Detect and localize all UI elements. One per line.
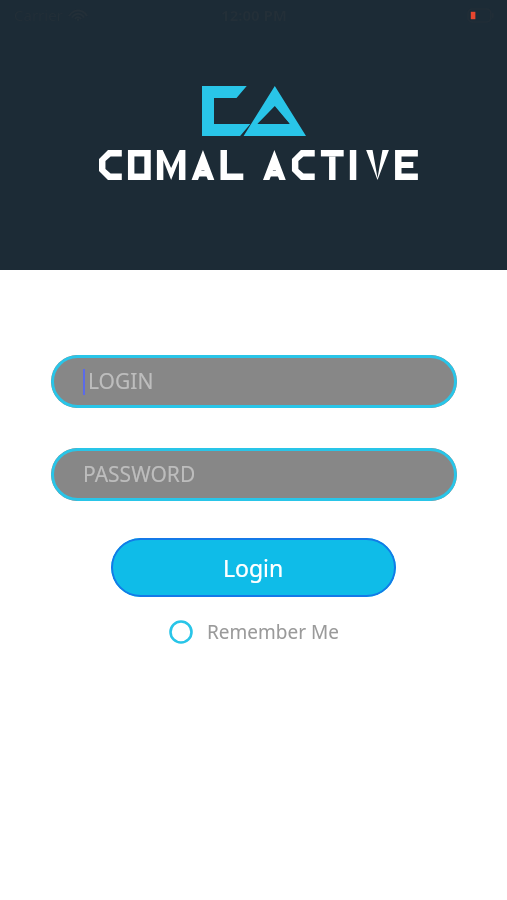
staticText: PASSWORD (83, 460, 196, 489)
other: COMAL ACTIVE (99, 150, 409, 180)
button[interactable]: Login (111, 538, 396, 597)
button[interactable]: Remember Me (163, 613, 345, 651)
button[interactable]: LOGIN (51, 355, 457, 408)
other: Comal Active logo (202, 86, 306, 136)
staticText: Remember Me (207, 619, 339, 645)
staticText: LOGIN (88, 367, 154, 396)
staticText: Login (223, 552, 284, 583)
button[interactable]: PASSWORD (51, 448, 457, 501)
